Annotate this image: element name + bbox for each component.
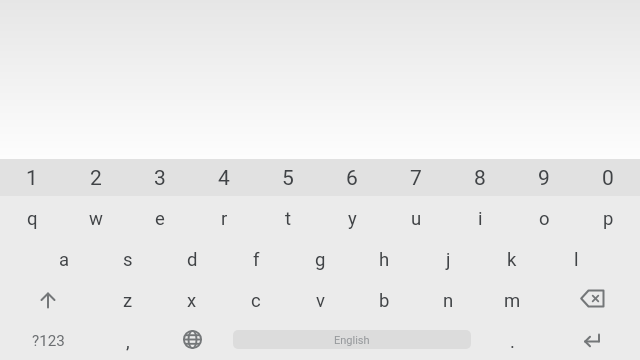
staticText: 1 (26, 166, 38, 191)
button[interactable]: c (224, 278, 288, 319)
button[interactable]: t (256, 196, 320, 237)
staticText: r (221, 208, 228, 230)
staticText: , (126, 331, 130, 353)
button[interactable]: h (352, 237, 416, 278)
staticText: x (187, 290, 197, 312)
button[interactable]: u (384, 196, 448, 237)
staticText: s (123, 249, 133, 271)
button[interactable]: v (288, 278, 352, 319)
staticText: u (411, 208, 422, 230)
button[interactable]: 8 (448, 159, 512, 196)
staticText: p (603, 208, 614, 230)
button[interactable]: 1 (0, 159, 64, 196)
button[interactable]: j (416, 237, 480, 278)
button[interactable]: i (448, 196, 512, 237)
button[interactable] (544, 319, 640, 360)
button[interactable]: w (64, 196, 128, 237)
button[interactable]: f (224, 237, 288, 278)
button[interactable]: y (320, 196, 384, 237)
button[interactable]: p (576, 196, 640, 237)
staticText: h (379, 249, 390, 271)
button[interactable]: e (128, 196, 192, 237)
staticText: 3 (154, 166, 166, 191)
button[interactable]: b (352, 278, 416, 319)
button[interactable]: English (224, 319, 480, 360)
staticText: o (539, 208, 550, 230)
staticText: j (446, 249, 451, 271)
staticText: y (348, 208, 357, 230)
button[interactable]: . (480, 319, 544, 360)
staticText: b (379, 290, 390, 312)
staticText: z (123, 290, 133, 312)
button[interactable]: 4 (192, 159, 256, 196)
staticText: l (574, 249, 579, 271)
button[interactable]: q (0, 196, 64, 237)
button[interactable]: l (544, 237, 608, 278)
staticText: m (504, 290, 521, 312)
staticText: k (507, 249, 517, 271)
button[interactable]: 5 (256, 159, 320, 196)
staticText: c (251, 290, 261, 312)
button[interactable]: 3 (128, 159, 192, 196)
staticText: v (316, 290, 325, 312)
staticText: 6 (346, 166, 358, 191)
staticText: e (155, 208, 165, 230)
button[interactable]: k (480, 237, 544, 278)
button[interactable]: s (96, 237, 160, 278)
staticText: 0 (602, 166, 614, 191)
staticText: ?123 (32, 332, 65, 350)
button[interactable]: a (32, 237, 96, 278)
button[interactable]: n (416, 278, 480, 319)
staticText: 8 (474, 166, 486, 191)
button[interactable]: 2 (64, 159, 128, 196)
staticText: t (285, 208, 292, 230)
staticText: 4 (218, 166, 230, 191)
button[interactable]: d (160, 237, 224, 278)
staticText: f (253, 249, 260, 271)
button[interactable] (544, 278, 640, 319)
button[interactable]: 6 (320, 159, 384, 196)
button[interactable]: 7 (384, 159, 448, 196)
staticText: 5 (282, 166, 294, 191)
staticText: 2 (90, 166, 102, 191)
staticText: g (315, 249, 326, 271)
staticText: . (510, 331, 515, 353)
button[interactable]: o (512, 196, 576, 237)
button[interactable]: , (96, 319, 160, 360)
button[interactable]: m (480, 278, 544, 319)
staticText: 7 (410, 166, 422, 191)
button[interactable] (160, 319, 224, 360)
staticText: d (187, 249, 198, 271)
staticText: q (27, 208, 38, 230)
staticText: a (59, 249, 70, 271)
staticText: w (89, 208, 103, 230)
staticText: 9 (538, 166, 550, 191)
button[interactable]: 9 (512, 159, 576, 196)
button[interactable]: ?123 (0, 319, 96, 360)
staticText: n (443, 290, 454, 312)
staticText: English (334, 334, 370, 347)
button[interactable]: 0 (576, 159, 640, 196)
staticText: i (478, 208, 483, 230)
button[interactable]: z (96, 278, 160, 319)
button[interactable]: g (288, 237, 352, 278)
button[interactable] (0, 278, 96, 319)
button[interactable]: r (192, 196, 256, 237)
button[interactable]: x (160, 278, 224, 319)
